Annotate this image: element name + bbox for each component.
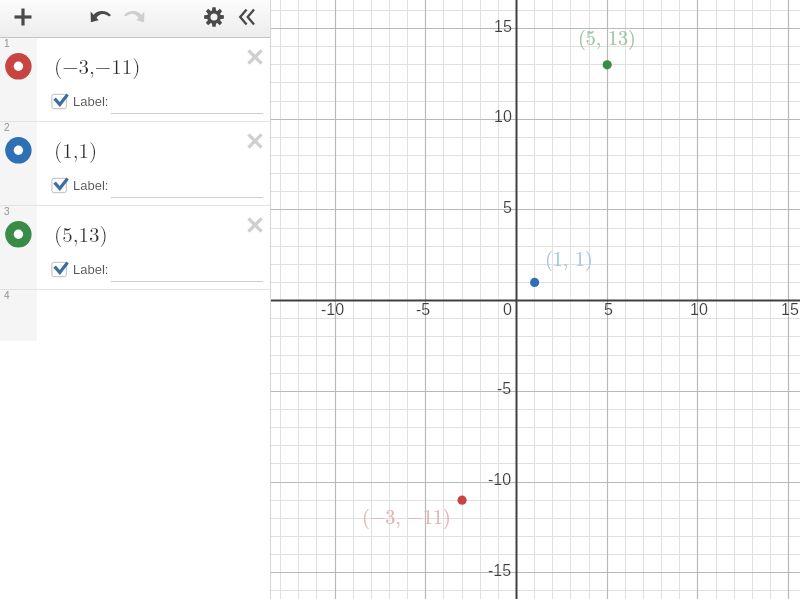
staticText: 2 <box>4 122 10 133</box>
staticText: (5,13) <box>54 218 108 248</box>
staticText: Label: <box>73 178 109 193</box>
staticText: 4 <box>4 290 10 301</box>
staticText: -10 <box>321 301 345 319</box>
staticText: 15 <box>494 18 512 36</box>
button[interactable]: 2 <box>0 122 271 206</box>
staticText: 5 <box>503 199 512 217</box>
button[interactable]: 4 <box>0 290 271 341</box>
staticText: -5 <box>416 301 431 319</box>
staticText: (5, 13) <box>578 22 636 50</box>
staticText: (−3, −11) <box>362 501 451 529</box>
button[interactable]: Delete expression <box>243 45 267 69</box>
button[interactable]: Delete expression <box>243 129 267 153</box>
staticText: 0 <box>503 301 512 319</box>
staticText: 15 <box>781 301 799 319</box>
staticText: 5 <box>604 301 613 319</box>
staticText: (1, 1) <box>545 243 593 271</box>
staticText: 10 <box>690 301 708 319</box>
staticText: (1,1) <box>54 134 98 164</box>
staticText: 3 <box>4 206 10 217</box>
staticText: Label: <box>73 262 109 277</box>
staticText: Label: <box>73 94 109 109</box>
button[interactable]: Redo <box>120 2 150 32</box>
button[interactable]: Delete expression <box>243 213 267 237</box>
staticText: 1 <box>4 38 10 49</box>
button[interactable]: Settings <box>199 2 229 32</box>
button[interactable]: 3 <box>0 206 271 290</box>
staticText: -10 <box>488 471 512 489</box>
staticText: -5 <box>497 380 512 398</box>
staticText: 10 <box>494 108 512 126</box>
button[interactable]: Add expression <box>8 2 38 32</box>
staticText: (−3,−11) <box>54 50 141 80</box>
button[interactable]: 1 <box>0 38 271 122</box>
staticText: -15 <box>488 562 512 580</box>
button[interactable]: Collapse panel <box>234 2 264 32</box>
button[interactable]: Undo <box>85 2 115 32</box>
